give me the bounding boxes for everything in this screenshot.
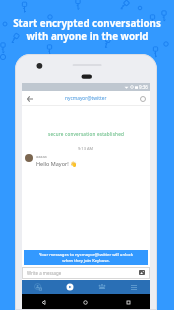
staticText: Hello Mayor! 👋 (36, 160, 78, 167)
staticText: 9:13 AM (78, 146, 94, 151)
button[interactable]: Back (22, 91, 37, 106)
button[interactable]: Home (64, 294, 107, 310)
button[interactable]: Your messages to nycmayor@twitter will u… (24, 250, 148, 265)
staticText: aaaaa (36, 154, 47, 159)
staticText: secure conversation established (48, 131, 125, 137)
button[interactable]: Back (22, 294, 64, 310)
staticText: Your messages to nycmayor@twitter will u… (39, 252, 133, 264)
staticText: Write a message (27, 270, 62, 276)
button[interactable]: Attach image (139, 270, 145, 275)
staticText: nycmayor@twitter (65, 95, 107, 102)
button[interactable]: Menu (118, 280, 150, 294)
button[interactable]: Teams (86, 280, 118, 294)
button[interactable]: Recents (107, 294, 150, 310)
button[interactable]: People (22, 280, 54, 294)
staticText: 9:36 (139, 84, 148, 90)
button[interactable]: Chat (54, 280, 86, 294)
staticText: with anyone in the world (26, 30, 149, 43)
button[interactable]: Info (135, 91, 150, 106)
staticText: Start encrypted conversations (13, 17, 161, 30)
